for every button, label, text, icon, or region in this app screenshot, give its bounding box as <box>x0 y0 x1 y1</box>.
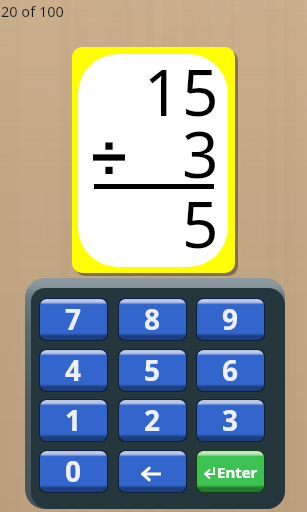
button[interactable]: 7 <box>40 299 107 340</box>
button[interactable]: 6 <box>197 350 264 391</box>
button[interactable]: 2 <box>119 400 186 441</box>
staticText: 20 of 100 <box>1 1 64 21</box>
button[interactable]: 0 <box>40 451 107 492</box>
staticText: 3 <box>72 110 220 197</box>
staticText: 15 <box>72 48 220 135</box>
staticText: 9 <box>222 300 239 338</box>
button[interactable]: 4 <box>40 350 107 391</box>
staticText: 2 <box>144 401 161 439</box>
staticText: 1 <box>65 401 82 439</box>
staticText: Enter <box>217 462 258 482</box>
staticText: 5 <box>72 180 220 267</box>
button[interactable]: 5 <box>119 350 186 391</box>
button[interactable]: 3 <box>197 400 264 441</box>
button[interactable]: Backspace <box>119 451 186 492</box>
button[interactable]: 8 <box>119 299 186 340</box>
staticText: 0 <box>65 452 82 490</box>
staticText: 7 <box>65 300 82 338</box>
button[interactable]: Enter <box>197 451 264 492</box>
staticText: 3 <box>222 401 239 439</box>
staticText: 8 <box>144 300 161 338</box>
staticText: 6 <box>222 351 239 389</box>
staticText: 4 <box>65 351 82 389</box>
staticText: 5 <box>144 351 161 389</box>
button[interactable]: 1 <box>40 400 107 441</box>
button[interactable]: 9 <box>197 299 264 340</box>
